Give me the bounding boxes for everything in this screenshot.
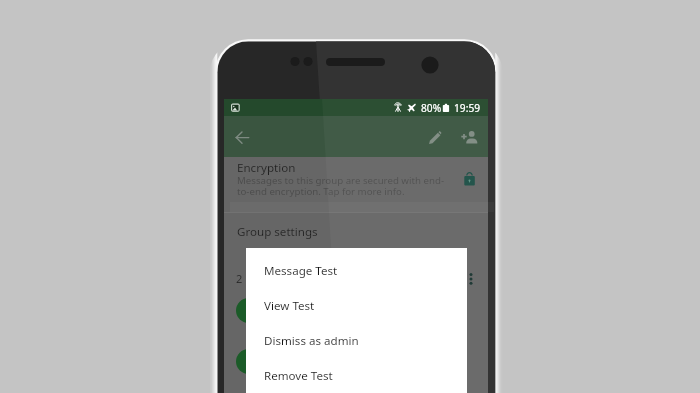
button[interactable]: Back	[228, 124, 257, 153]
button[interactable]: View Test	[246, 288, 467, 323]
button[interactable]: Message Test	[246, 253, 467, 288]
staticText: 19:59	[454, 101, 481, 115]
button[interactable]: Add participant	[452, 121, 483, 152]
staticText: View Test	[264, 298, 315, 314]
button[interactable]	[224, 336, 488, 386]
button[interactable]: Edit	[421, 123, 450, 152]
staticText: Message Test	[264, 263, 338, 279]
staticText: Encryption	[237, 160, 296, 176]
staticText: Group settings	[237, 224, 318, 240]
button[interactable]	[224, 285, 488, 335]
button[interactable]: More options	[460, 265, 482, 293]
staticText: Remove Test	[264, 368, 333, 384]
button[interactable]: Dismiss as admin	[246, 323, 467, 358]
button[interactable]: Remove Test	[246, 358, 467, 393]
staticText: 2 participants	[236, 271, 307, 286]
staticText: Messages to this group are secured with …	[237, 174, 445, 198]
staticText: Dismiss as admin	[264, 333, 359, 349]
staticText: 80%	[421, 101, 442, 115]
